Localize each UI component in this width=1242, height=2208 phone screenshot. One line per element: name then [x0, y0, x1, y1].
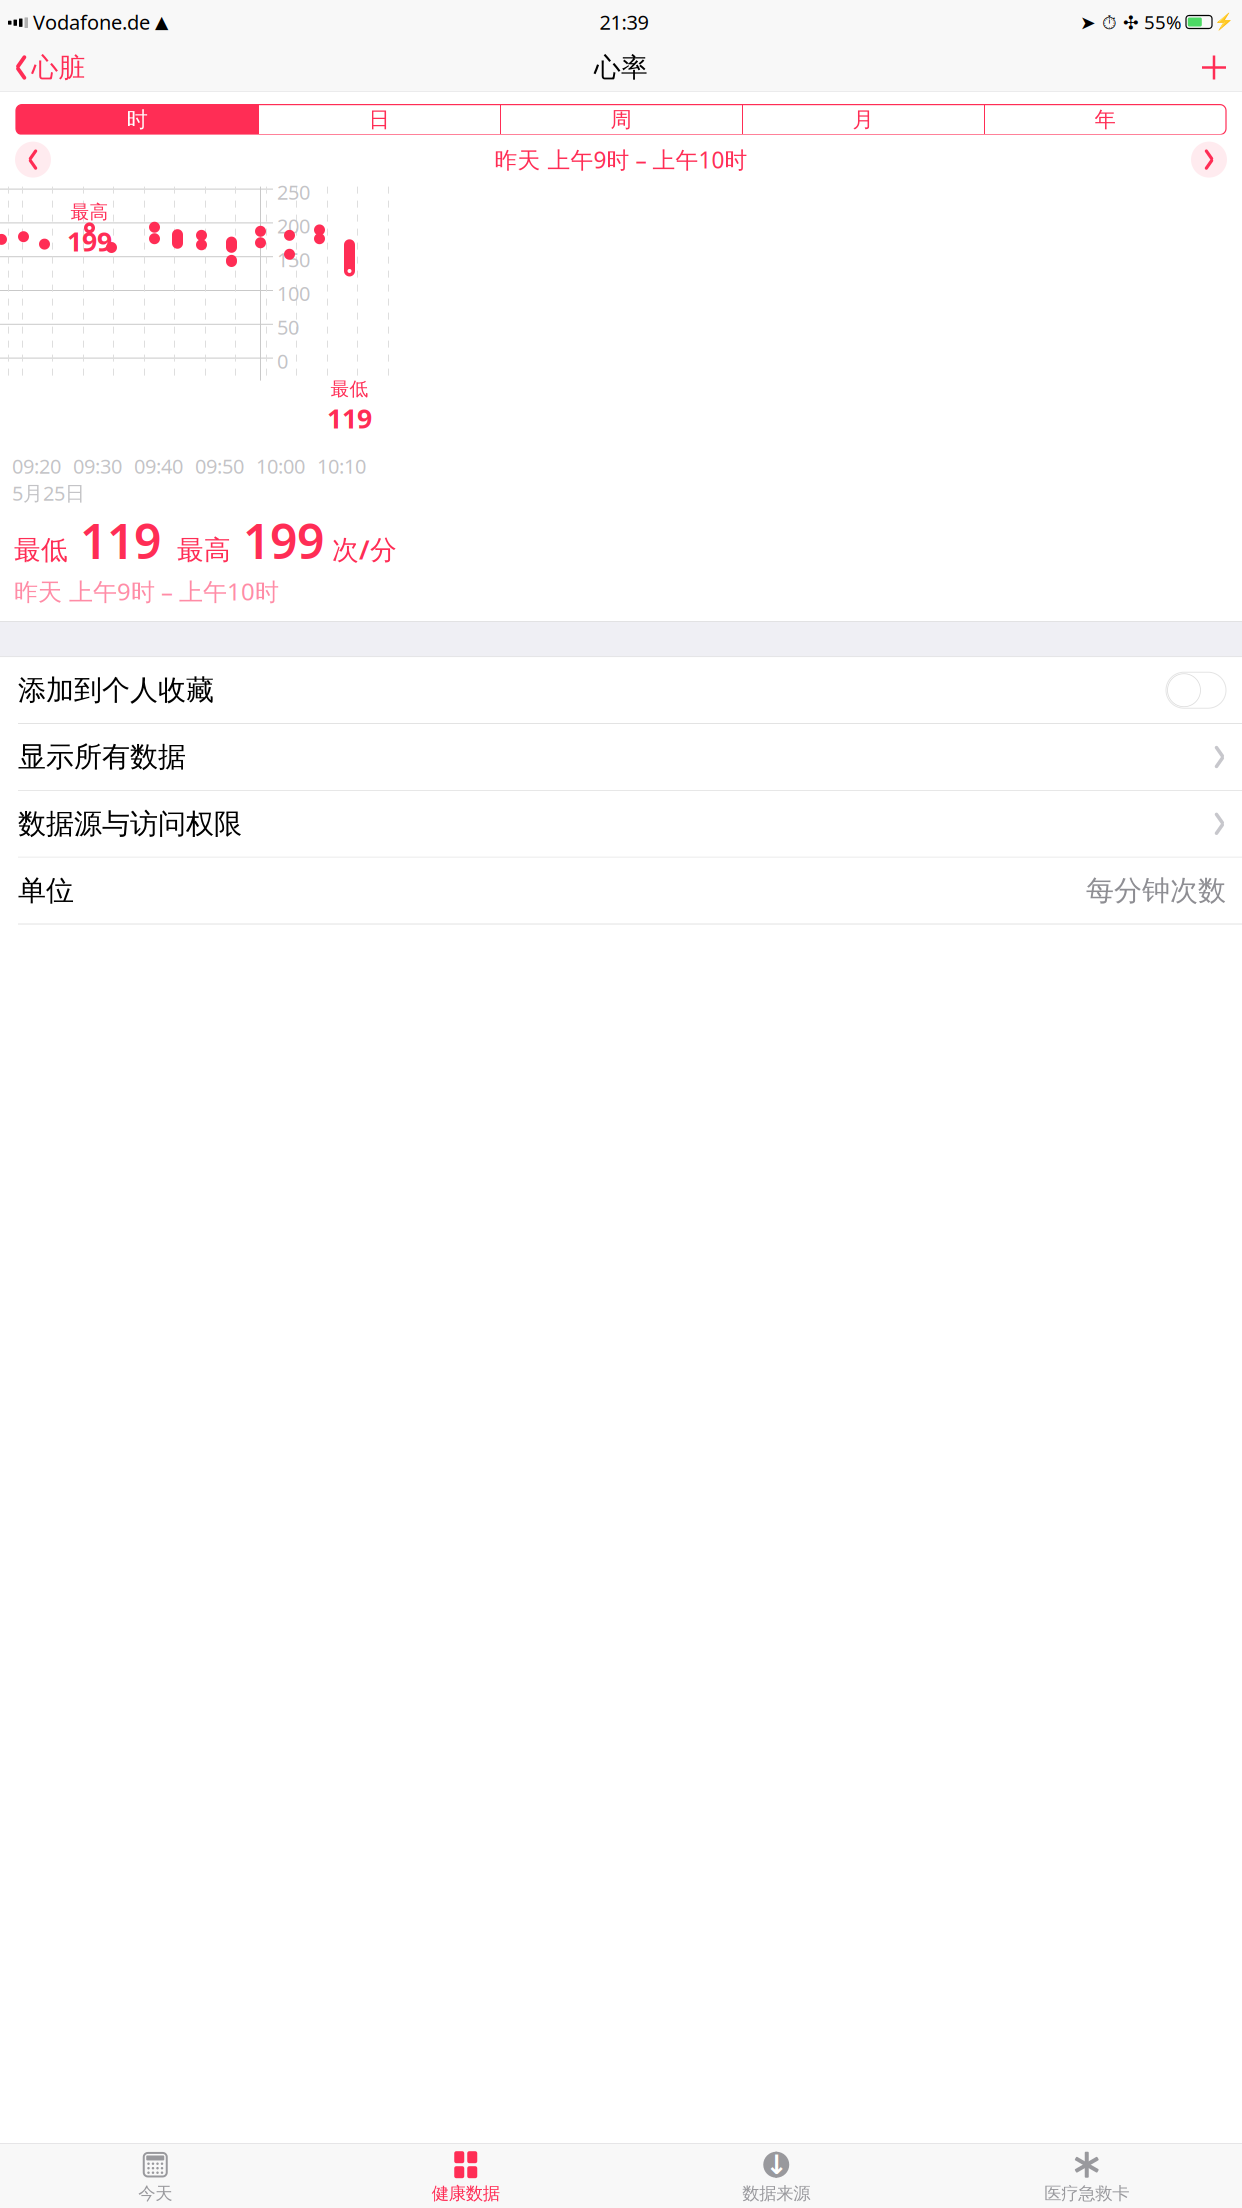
staticText: 添加到个人收藏 [18, 673, 214, 707]
button[interactable]: 周 [500, 105, 742, 135]
button[interactable]: 月 [742, 105, 984, 135]
staticText: 119 [327, 400, 372, 436]
button[interactable]: 上一小时 [10, 137, 56, 183]
staticText: 09:50 [195, 453, 244, 479]
staticText: 最低 [14, 534, 68, 567]
button[interactable]: 医疗急救卡 [931, 2144, 1242, 2208]
staticText: 100 [277, 280, 310, 307]
button[interactable]: 添加到个人收藏 [0, 657, 1242, 724]
staticText: 最低 [330, 378, 368, 400]
staticText: 心脏 [31, 51, 85, 84]
staticText: ↓ [765, 2150, 787, 2180]
button[interactable]: 显示所有数据 [0, 724, 1242, 791]
staticText: 119 [68, 509, 161, 572]
staticText: 显示所有数据 [18, 740, 186, 774]
staticText: 最高 [70, 201, 108, 223]
staticText: 10:00 [256, 453, 305, 479]
staticText: 医疗急救卡 [1044, 2183, 1129, 2204]
staticText: 每分钟次数 [1086, 873, 1226, 908]
staticText: ⚡ [1214, 13, 1234, 31]
staticText: 199 [231, 509, 324, 572]
staticText: 次/分 [324, 531, 397, 567]
button[interactable]: 健康数据 [310, 2144, 621, 2208]
staticText: 10:10 [317, 453, 366, 479]
staticText: 周 [610, 106, 631, 133]
staticText: 最高 [161, 534, 231, 567]
staticText: 09:20 [12, 453, 61, 479]
staticText: 今天 [138, 2183, 172, 2204]
staticText: 250 [277, 179, 310, 205]
staticText: 09:40 [134, 453, 183, 479]
staticText: 199 [67, 223, 112, 259]
button[interactable]: ↓ [621, 2144, 931, 2208]
button[interactable]: 数据源与访问权限 [0, 791, 1242, 858]
staticText: 昨天 上午9时 – 上午10时 [14, 575, 279, 607]
staticText: 数据来源 [742, 2183, 810, 2204]
staticText: ▲ [155, 12, 168, 32]
button[interactable]: 日 [258, 105, 500, 135]
button[interactable]: 时 [16, 105, 258, 135]
staticText: ➤ ⏱ ✣ 55% [1080, 10, 1182, 34]
staticText: Vodafone.de [33, 9, 150, 35]
staticText: 时 [126, 106, 147, 133]
staticText: 昨天 上午9时 – 上午10时 [494, 144, 747, 175]
button[interactable]: 单位 [0, 858, 1242, 924]
staticText: 单位 [18, 873, 74, 908]
staticText: 200 [277, 212, 310, 239]
staticText: 5月25日 [12, 480, 85, 506]
staticText: 数据源与访问权限 [18, 807, 242, 841]
staticText: 0 [277, 348, 288, 374]
staticText: 日 [368, 106, 389, 133]
staticText: 月 [852, 106, 873, 133]
staticText: 健康数据 [432, 2183, 500, 2204]
staticText: 09:30 [73, 453, 122, 479]
button[interactable]: 添加 [1192, 45, 1236, 89]
button[interactable]: 下一小时 [1186, 137, 1232, 183]
staticText: 150 [277, 246, 310, 273]
button[interactable]: 年 [984, 105, 1226, 135]
staticText: 21:39 [599, 9, 648, 35]
staticText: 年 [1094, 106, 1115, 133]
button[interactable]: 今天 [0, 2144, 310, 2208]
button[interactable]: 心脏 [6, 45, 93, 89]
staticText: 心率 [594, 51, 648, 84]
staticText: 50 [277, 314, 299, 340]
